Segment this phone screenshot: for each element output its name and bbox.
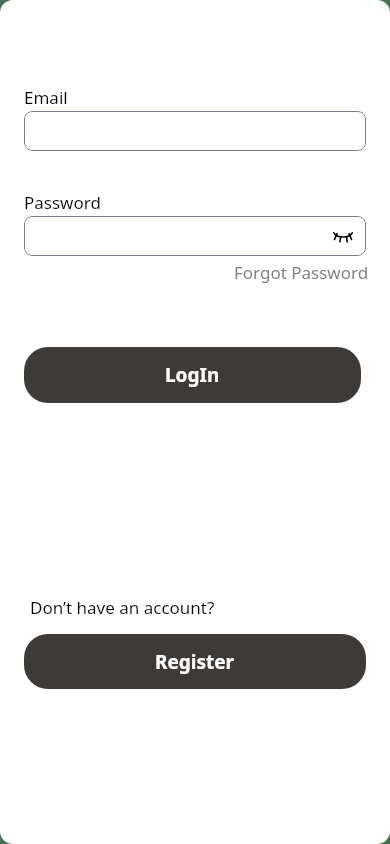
button[interactable]: Forgot Password xyxy=(234,261,369,284)
staticText: LogIn xyxy=(165,362,220,388)
staticText: Don’t have an account? xyxy=(30,596,215,619)
button[interactable]: Password input field xyxy=(24,216,366,256)
staticText: Register xyxy=(155,649,235,675)
staticText: Password xyxy=(24,191,101,214)
button[interactable]: Show password xyxy=(329,222,357,250)
button[interactable]: Email input field xyxy=(24,111,366,151)
button[interactable]: LogIn xyxy=(24,347,361,403)
staticText: Email xyxy=(24,86,68,109)
button[interactable]: Register xyxy=(24,634,366,689)
